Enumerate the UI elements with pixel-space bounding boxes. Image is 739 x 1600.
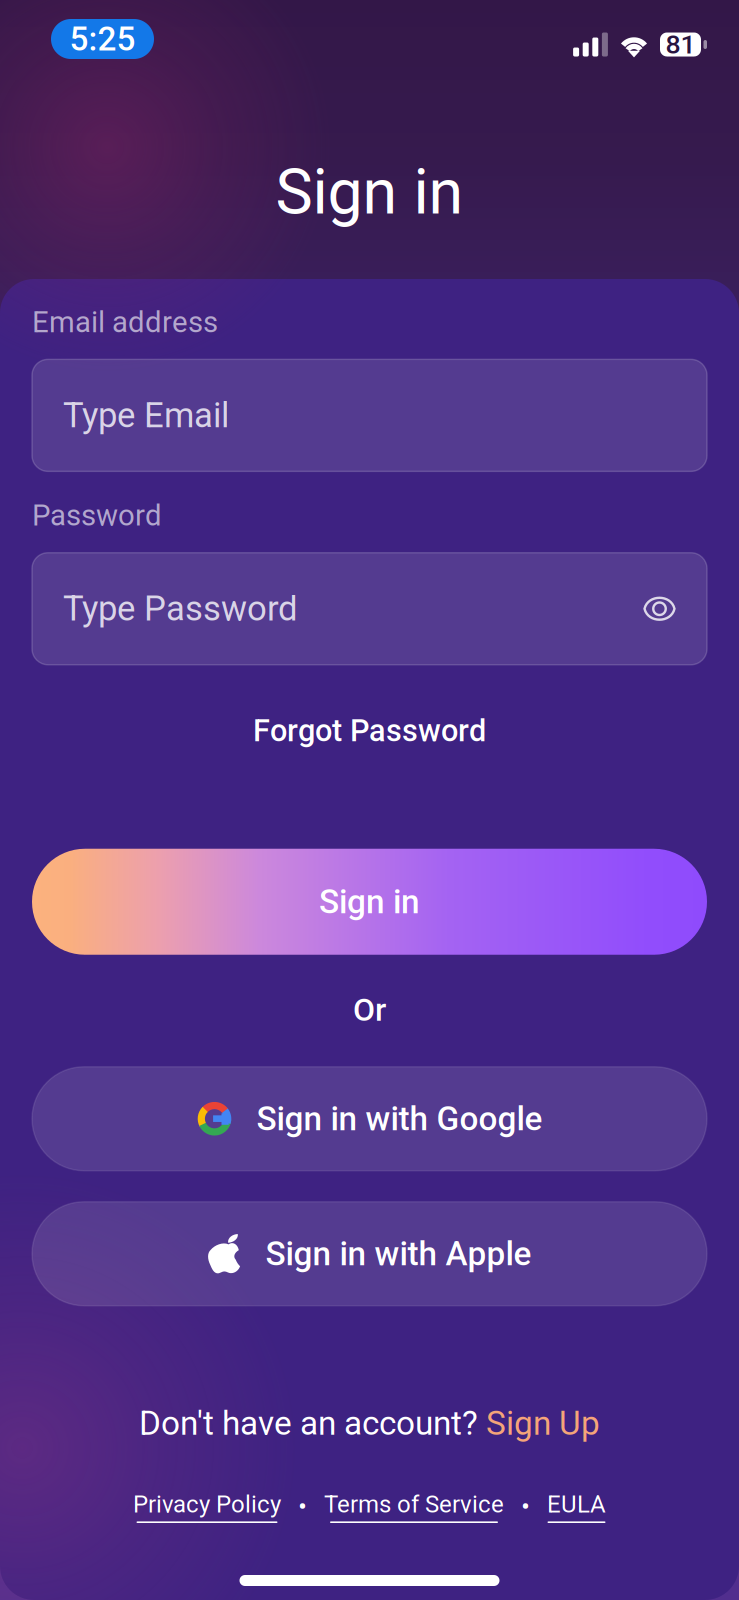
staticText: 81 bbox=[665, 29, 695, 60]
staticText: Sign Up bbox=[486, 1404, 600, 1443]
button[interactable]: Sign in with Google bbox=[32, 1067, 707, 1171]
staticText: Terms of Service bbox=[324, 1490, 504, 1518]
staticText: • bbox=[521, 1491, 530, 1522]
staticText: Or bbox=[353, 991, 386, 1028]
button[interactable]: Terms of Service bbox=[324, 1490, 504, 1523]
staticText: • bbox=[298, 1491, 307, 1522]
staticText: Don't have an account? bbox=[139, 1404, 486, 1443]
staticText: Sign in with Google bbox=[256, 1099, 542, 1138]
staticText: Email address bbox=[32, 305, 218, 339]
staticText: 5:25 bbox=[69, 19, 135, 59]
staticText: Type Password bbox=[63, 588, 298, 629]
staticText: Sign in bbox=[319, 882, 420, 921]
button[interactable]: Privacy Policy bbox=[133, 1490, 281, 1523]
staticText: Sign in bbox=[275, 155, 463, 229]
staticText: Type Email bbox=[63, 395, 229, 436]
button[interactable]: EULA bbox=[547, 1490, 606, 1523]
staticText: Privacy Policy bbox=[133, 1490, 281, 1518]
staticText: Password bbox=[32, 498, 162, 533]
staticText: EULA bbox=[547, 1490, 606, 1518]
staticText: Forgot Password bbox=[253, 713, 486, 749]
button[interactable]: Sign in bbox=[32, 849, 707, 955]
button[interactable]: Sign Up bbox=[486, 1404, 600, 1443]
staticText: Sign in with Apple bbox=[265, 1234, 531, 1273]
button[interactable]: Show password bbox=[643, 594, 676, 624]
button[interactable]: Forgot Password bbox=[32, 712, 707, 750]
button[interactable]: Sign in with Apple bbox=[32, 1202, 707, 1306]
